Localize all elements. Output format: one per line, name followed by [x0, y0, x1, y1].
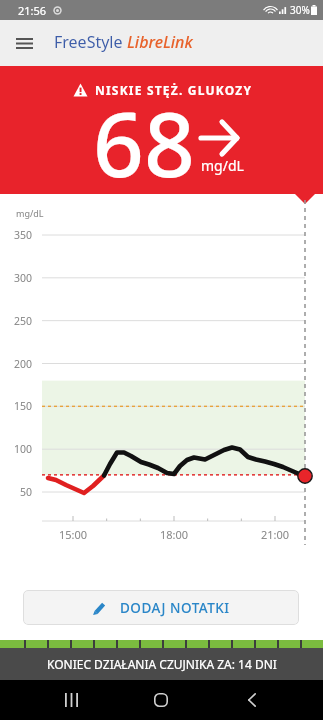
staticText: 18:00 — [160, 527, 189, 542]
staticText: 100 — [14, 442, 33, 456]
staticText: 68 — [93, 82, 195, 203]
staticText: 50 — [20, 485, 33, 499]
staticText: 300 — [14, 271, 33, 285]
button[interactable]: DODAJ NOTATKI — [23, 590, 299, 625]
staticText: 250 — [14, 314, 33, 328]
staticText: 15:00 — [59, 527, 88, 542]
staticText: 350 — [14, 228, 33, 242]
staticText: 150 — [14, 399, 33, 413]
button[interactable]: Back — [229, 680, 275, 720]
staticText: NISKIE STĘŻ. GLUKOZY — [95, 82, 253, 98]
staticText: LibreLink — [127, 31, 193, 53]
button[interactable]: Home — [138, 680, 184, 720]
staticText: FreeStyle — [54, 31, 127, 53]
staticText: 30% — [290, 3, 310, 17]
staticText: 200 — [14, 357, 33, 371]
staticText: mg/dL — [201, 156, 244, 175]
staticText: DODAJ NOTATKI — [120, 599, 230, 617]
button[interactable]: Menu — [7, 26, 41, 60]
button[interactable]: Recents — [48, 680, 94, 720]
staticText: mg/dL — [16, 207, 44, 219]
staticText: KONIEC DZIAŁANIA CZUJNIKA ZA: 14 DNI — [47, 656, 277, 672]
staticText: 21:00 — [261, 527, 290, 542]
staticText: 21:56 — [18, 3, 47, 18]
